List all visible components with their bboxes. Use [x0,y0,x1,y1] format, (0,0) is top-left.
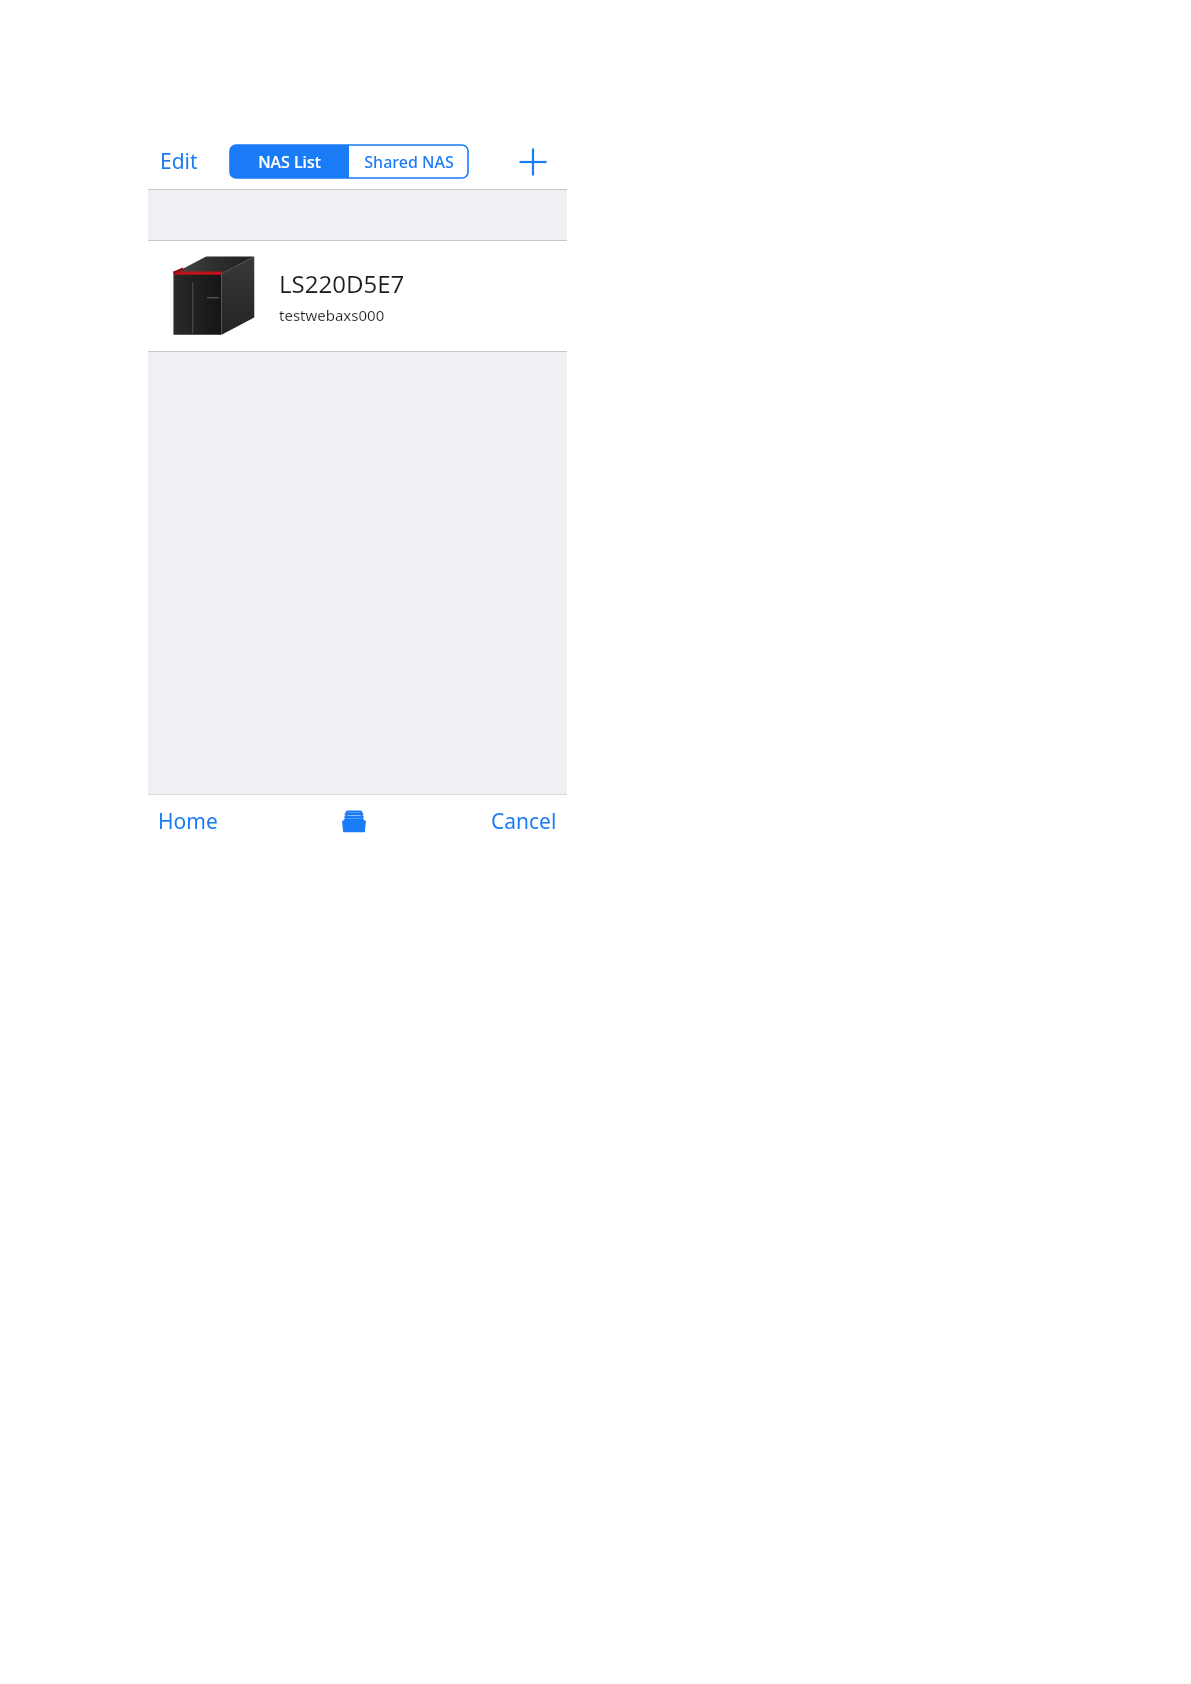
button[interactable]: Home [150,799,226,844]
staticText: Home [158,807,218,836]
staticText: NAS List [258,151,321,173]
button[interactable]: Cancel [483,799,565,844]
staticText: testwebaxs000 [279,305,385,325]
button[interactable]: NAS List [230,145,349,178]
staticText: Shared NAS [364,151,454,173]
button[interactable]: Add NAS [513,142,553,182]
staticText: Cancel [491,807,557,836]
button[interactable]: LS220D5E7 [148,240,567,352]
button[interactable]: Edit [152,141,206,182]
button[interactable]: Storage tray [331,799,377,845]
staticText: LS220D5E7 [279,267,405,300]
button[interactable]: Shared NAS [349,145,468,178]
staticText: Edit [160,147,198,176]
